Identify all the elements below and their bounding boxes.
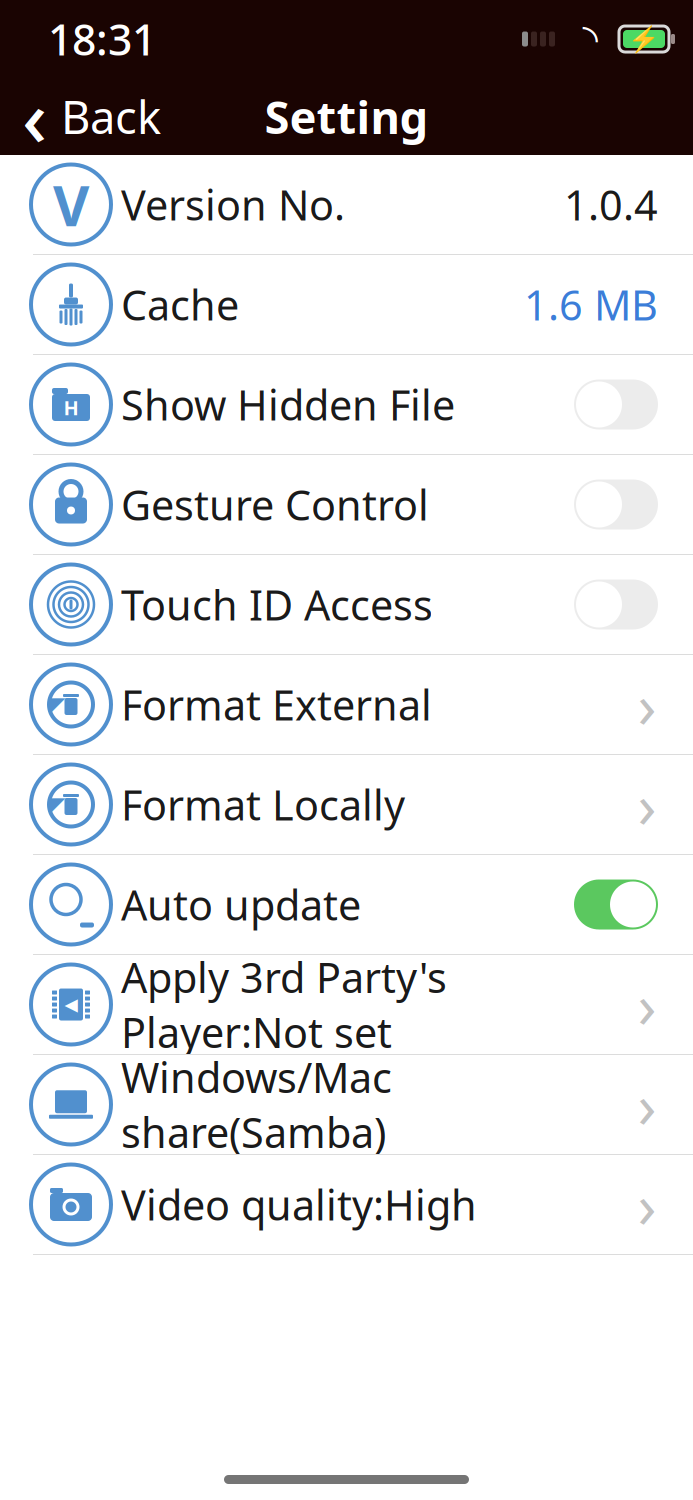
staticText: Format Locally <box>121 777 405 832</box>
staticText: 1.6 MB <box>524 277 658 332</box>
button[interactable]: ◤ <box>0 755 693 855</box>
button[interactable]: H <box>0 355 693 455</box>
staticText: Auto update <box>121 877 361 932</box>
staticText: Show Hidden File <box>121 377 455 432</box>
staticText: ◀ <box>64 995 77 1014</box>
button[interactable]: ◤ <box>0 655 693 755</box>
button[interactable]: ◀ <box>0 955 693 1055</box>
staticText: 1.0.4 <box>564 177 658 232</box>
staticText: › <box>637 764 656 845</box>
staticText: › <box>637 964 656 1045</box>
staticText: Touch ID Access <box>121 577 433 632</box>
staticText: Windows/Mac share(Samba) <box>121 1050 392 1159</box>
button[interactable]: Video quality:High <box>0 1155 693 1255</box>
staticText: Video quality:High <box>121 1177 477 1232</box>
staticText: ‹ <box>22 65 47 168</box>
staticText: Cache <box>121 277 239 332</box>
button[interactable]: Gesture Control <box>0 455 693 555</box>
staticText: H <box>63 394 78 421</box>
button[interactable]: Cache <box>0 255 693 355</box>
button[interactable]: ‹ <box>0 78 177 155</box>
staticText: Gesture Control <box>121 477 429 532</box>
button[interactable]: Touch ID Access <box>0 555 693 655</box>
staticText: ⚡ <box>628 24 660 53</box>
staticText: Back <box>61 86 161 147</box>
staticText: 18:31 <box>48 11 156 67</box>
staticText: › <box>637 1164 656 1245</box>
staticText: ◤ <box>49 692 65 717</box>
staticText: Setting <box>264 86 428 147</box>
staticText: › <box>637 1064 656 1145</box>
staticText: V <box>53 167 89 242</box>
staticText: › <box>637 664 656 745</box>
button[interactable]: Auto update <box>0 855 693 955</box>
button[interactable]: Windows/Mac share(Samba) <box>0 1055 693 1155</box>
staticText: ◤ <box>49 792 65 817</box>
staticText: Version No. <box>121 177 345 232</box>
staticText: Format External <box>121 677 432 732</box>
staticText: Apply 3rd Party's Player:Not set <box>121 950 447 1059</box>
button[interactable]: V <box>0 155 693 255</box>
staticText: ◝ <box>582 16 597 62</box>
